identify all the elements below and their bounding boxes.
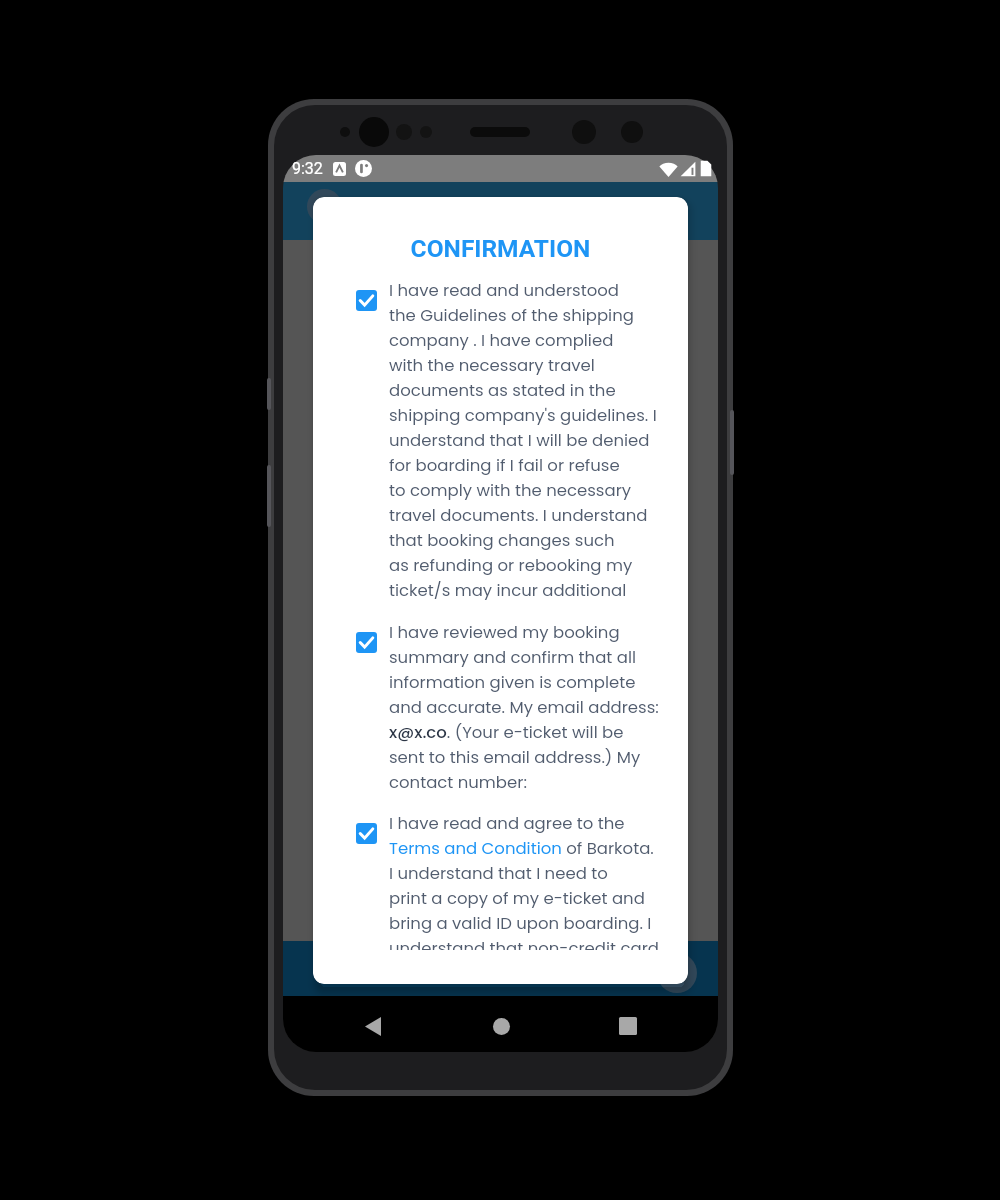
staticText: I have read and agree to the Terms and C… xyxy=(389,812,659,950)
staticText: CONFIRMATION xyxy=(313,234,688,263)
button[interactable]: Back xyxy=(350,1003,396,1049)
staticText: I have read and understood the Guideline… xyxy=(389,279,657,602)
button[interactable]: Agree checkbox, checked xyxy=(356,290,377,311)
staticText: 9:32 xyxy=(292,159,323,178)
button[interactable]: Agree checkbox, checked xyxy=(356,632,377,653)
button[interactable]: Home xyxy=(478,1003,524,1049)
button[interactable]: Agree checkbox, checked xyxy=(356,823,377,844)
button[interactable]: Recent apps xyxy=(605,1003,651,1049)
button[interactable]: Continue xyxy=(657,953,697,993)
button[interactable]: Back xyxy=(307,189,342,224)
staticText: I have reviewed my booking summary and c… xyxy=(389,621,659,794)
